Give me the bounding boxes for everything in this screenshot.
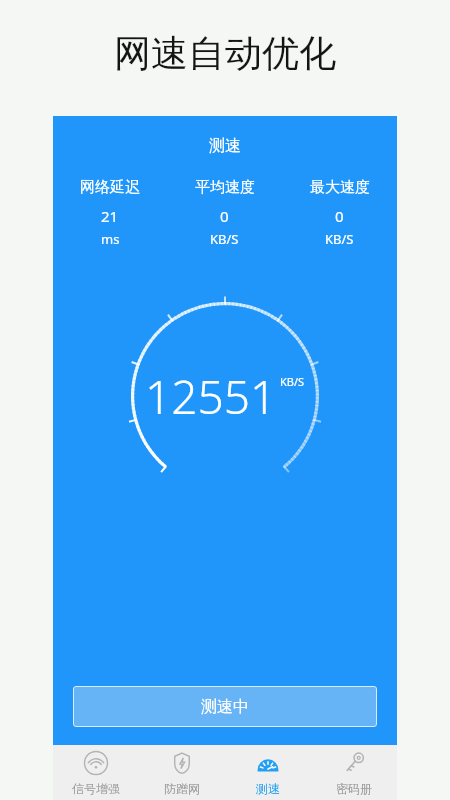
staticText: 网速自动优化 xyxy=(114,30,336,77)
button[interactable]: 测速中 xyxy=(73,686,377,727)
staticText: 网络延迟 xyxy=(80,178,140,197)
staticText: KB/S xyxy=(325,230,354,248)
staticText: 密码册 xyxy=(336,781,372,796)
staticText: 最大速度 xyxy=(310,178,370,197)
staticText: 防蹭网 xyxy=(164,781,200,796)
staticText: 测速 xyxy=(256,781,280,796)
staticText: ms xyxy=(101,230,120,248)
staticText: 信号增强 xyxy=(72,781,120,796)
button[interactable]: 防蹭网 xyxy=(139,745,225,800)
staticText: 测速中 xyxy=(201,697,249,717)
button[interactable]: 信号增强 xyxy=(53,745,139,800)
staticText: 0 xyxy=(335,206,344,226)
staticText: 0 xyxy=(220,206,229,226)
staticText: 平均速度 xyxy=(195,178,255,197)
button[interactable]: 密码册 xyxy=(311,745,397,800)
staticText: KB/S xyxy=(210,230,239,248)
staticText: 12551 xyxy=(145,365,277,428)
staticText: KB/S xyxy=(280,374,305,389)
staticText: 测速 xyxy=(209,136,241,156)
staticText: 21 xyxy=(101,206,119,226)
button[interactable]: 测速 xyxy=(225,745,311,800)
